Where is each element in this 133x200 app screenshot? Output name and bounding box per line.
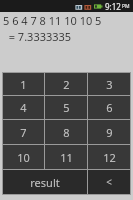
button[interactable]: 10 — [3, 145, 44, 169]
staticText: 7 — [20, 125, 27, 140]
staticText: 5 6 4 7 8 11 10 10 5 — [3, 13, 102, 28]
button[interactable]: < — [88, 170, 130, 194]
staticText: 5 — [63, 100, 70, 115]
staticText: 10 — [17, 150, 30, 165]
button[interactable]: 8 — [45, 120, 87, 144]
staticText: 3 — [106, 77, 113, 92]
staticText: 12 — [103, 150, 116, 165]
staticText: = 7.3333335 — [3, 29, 72, 44]
button[interactable]: result — [3, 170, 87, 194]
staticText: 11 — [60, 150, 73, 165]
button[interactable]: 5 — [45, 96, 87, 119]
button[interactable]: 9 — [88, 120, 130, 144]
staticText: 9 — [106, 125, 113, 140]
button[interactable]: 4 — [3, 96, 44, 119]
staticText: PM — [122, 3, 130, 10]
button[interactable]: 2 — [45, 73, 87, 95]
staticText: 2 — [63, 77, 70, 92]
button[interactable]: 1 — [3, 73, 44, 95]
staticText: 8 — [63, 125, 70, 140]
button[interactable]: 6 — [88, 96, 130, 119]
button[interactable]: 12 — [88, 145, 130, 169]
staticText: 6 — [106, 100, 113, 115]
button[interactable]: 7 — [3, 120, 44, 144]
button[interactable]: 3 — [88, 73, 130, 95]
staticText: < — [106, 175, 112, 189]
button[interactable]: 11 — [45, 145, 87, 169]
staticText: 9:12 — [105, 1, 121, 12]
staticText: 1 — [20, 77, 27, 92]
staticText: result — [30, 175, 60, 190]
staticText: 4 — [20, 100, 27, 115]
